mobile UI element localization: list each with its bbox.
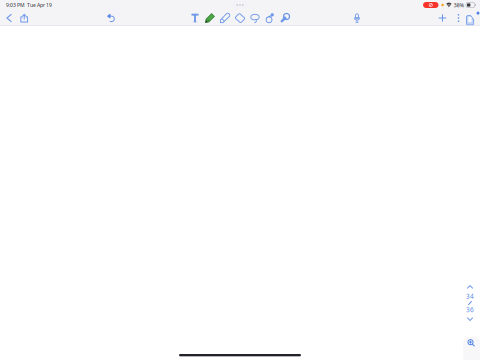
button[interactable]: Zoom in xyxy=(463,337,480,360)
button[interactable]: Highlighter xyxy=(217,10,232,25)
staticText: 38% xyxy=(453,1,464,9)
button[interactable]: Text xyxy=(187,10,202,25)
button[interactable]: Back xyxy=(2,10,17,25)
button[interactable]: Sticker xyxy=(277,10,292,25)
button[interactable]: Pages xyxy=(466,11,480,25)
staticText: 36 xyxy=(466,305,474,314)
button[interactable]: More xyxy=(450,10,466,26)
button[interactable]: Next page xyxy=(463,314,477,324)
button[interactable]: Shapes xyxy=(262,10,277,25)
button[interactable]: Record audio xyxy=(349,10,365,26)
button[interactable]: Lasso xyxy=(247,10,262,25)
staticText: 9:03 PM xyxy=(6,1,25,8)
button[interactable]: Eraser xyxy=(232,10,247,25)
staticText: 34 xyxy=(466,292,474,301)
button[interactable]: Add xyxy=(434,10,450,26)
button[interactable]: Undo xyxy=(103,10,119,26)
staticText: Tue Apr 19 xyxy=(25,1,52,8)
button[interactable]: Share xyxy=(17,10,32,25)
button[interactable]: Pen xyxy=(202,10,217,25)
button[interactable]: Previous page xyxy=(463,282,477,292)
